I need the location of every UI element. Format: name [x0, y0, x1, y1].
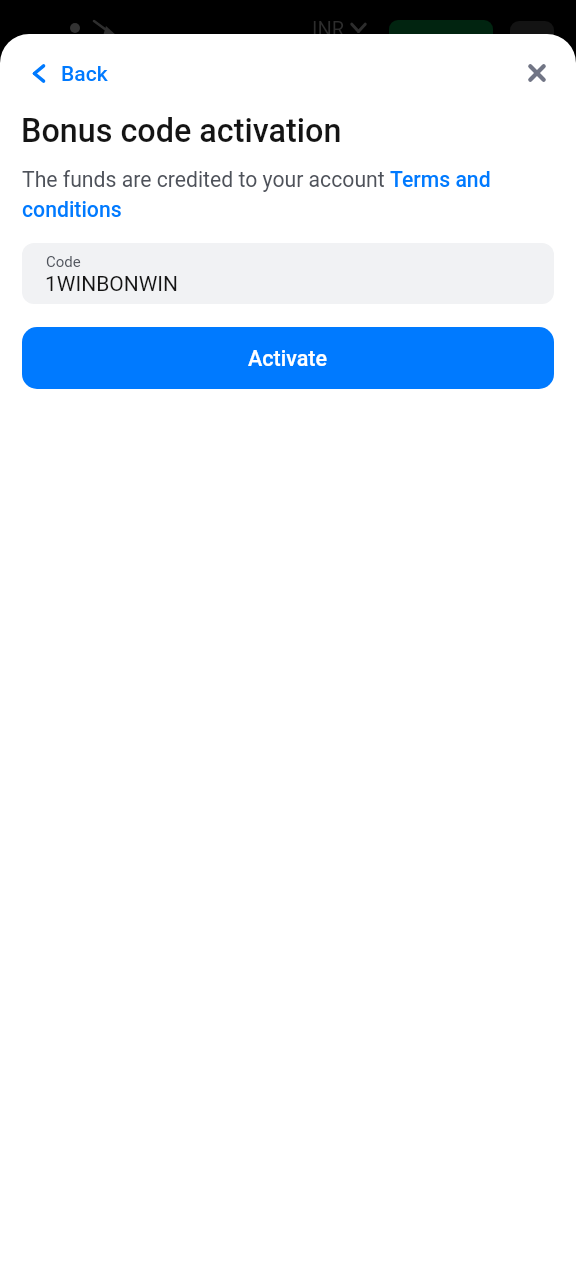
staticText: The funds are credited to your account T… [22, 163, 504, 223]
button[interactable]: Close [515, 51, 559, 95]
staticText: INR [312, 17, 345, 40]
staticText: Bonus code activation [21, 112, 342, 150]
button[interactable]: Activate [22, 327, 554, 389]
staticText: Code [46, 253, 81, 271]
staticText: Activate [248, 346, 328, 371]
staticText: 1WINBONWIN [45, 272, 178, 297]
button[interactable]: Back [24, 53, 118, 96]
button[interactable]: Code [22, 243, 554, 304]
staticText: Back [61, 62, 108, 87]
